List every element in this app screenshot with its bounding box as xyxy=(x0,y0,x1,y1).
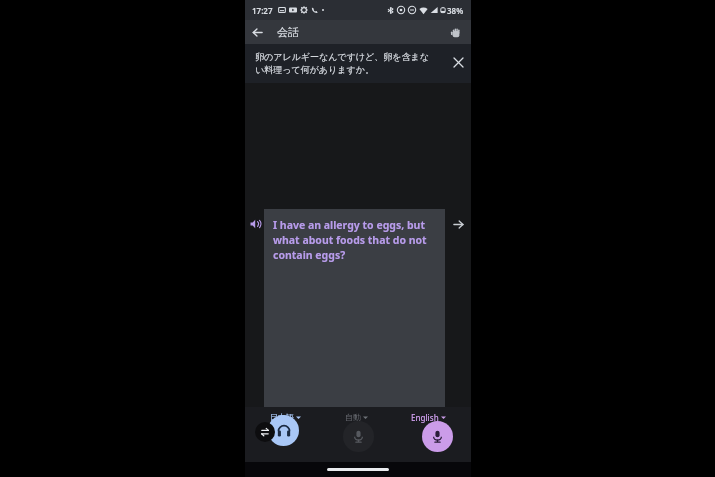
staticText: 日本語 xyxy=(270,412,294,422)
button[interactable]: I have an allergy to eggs, but what abou… xyxy=(264,209,445,407)
button[interactable]: Play audio xyxy=(245,209,264,239)
staticText: 17:27 xyxy=(252,5,273,16)
staticText: 会話 xyxy=(277,25,299,39)
button[interactable]: Automatic microphone xyxy=(343,421,374,452)
staticText: I have an allergy to eggs, but what abou… xyxy=(273,218,439,262)
button[interactable]: Listen with headphones xyxy=(268,415,299,446)
button[interactable]: Back xyxy=(245,20,269,44)
button[interactable]: Swap languages xyxy=(255,422,275,442)
button[interactable]: Speak English xyxy=(422,421,453,452)
button[interactable]: Expand translation xyxy=(445,209,471,239)
staticText: 卵のアレルギーなんですけど、卵を含まない料理って何がありますか。 xyxy=(255,51,435,76)
staticText: 38% xyxy=(447,5,464,16)
button[interactable]: English xyxy=(408,411,449,424)
button[interactable]: 自動 xyxy=(342,411,371,423)
button[interactable]: Close xyxy=(447,51,469,73)
button[interactable]: Gesture help xyxy=(444,20,468,44)
staticText: English xyxy=(411,412,439,423)
staticText: 自動 xyxy=(345,412,361,422)
button[interactable]: 日本語 xyxy=(267,411,304,423)
